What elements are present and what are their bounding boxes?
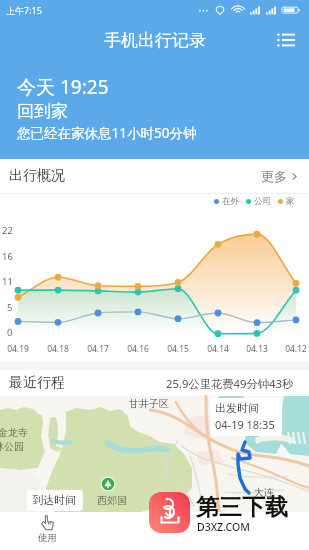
staticText: 04.19 (0, 343, 37, 355)
staticText: 0 (7, 326, 13, 339)
staticText: 您已经在家休息11小时50分钟 (17, 124, 197, 142)
staticText: 今天 19:25 (17, 74, 109, 100)
staticText: 回到家 (17, 101, 68, 122)
staticText: 金龙寺 (0, 426, 28, 439)
staticText: 22 (2, 224, 13, 237)
staticText: D3XZ.COM (197, 520, 250, 534)
staticText: 出行概况 (9, 167, 65, 185)
staticText: 大连 (254, 486, 274, 499)
staticText: 甘井子区 (129, 397, 169, 410)
staticText: 25.9公里花费49分钟43秒 (166, 376, 294, 391)
staticText: 04-19 18:35 (215, 417, 275, 432)
staticText: 更多 (261, 168, 287, 184)
staticText: 到达时间 (32, 493, 76, 507)
staticText: 在外 (222, 196, 239, 207)
staticText: 上午7:15 (6, 4, 42, 16)
button[interactable]: 出行概况 (0, 159, 309, 193)
staticText: 04.14 (199, 343, 237, 355)
button[interactable]: 到达时间 (27, 490, 83, 511)
staticText: 04.12 (277, 343, 309, 355)
staticText: 手机出行记录 (104, 30, 206, 51)
button[interactable]: Menu (273, 27, 299, 53)
staticText: 04.17 (79, 343, 117, 355)
button[interactable]: 使用 (38, 514, 57, 544)
staticText: 04.16 (119, 343, 157, 355)
staticText: 西郊国 (97, 494, 127, 507)
staticText: 5 (7, 301, 13, 314)
staticText: 最近行程 (9, 374, 65, 392)
staticText: 04.15 (159, 343, 197, 355)
staticText: 04.18 (39, 343, 77, 355)
staticText: 使用 (38, 532, 57, 544)
staticText: 16 (2, 250, 13, 263)
staticText: 出发时间 (215, 401, 259, 415)
staticText: 林公园 (0, 440, 24, 453)
staticText: 第三下载 (196, 493, 288, 522)
staticText: 04.13 (238, 343, 276, 355)
staticText: 公司 (254, 196, 271, 207)
button[interactable]: 出发时间 (210, 398, 282, 436)
staticText: 11 (2, 275, 13, 288)
staticText: 家 (286, 196, 295, 207)
